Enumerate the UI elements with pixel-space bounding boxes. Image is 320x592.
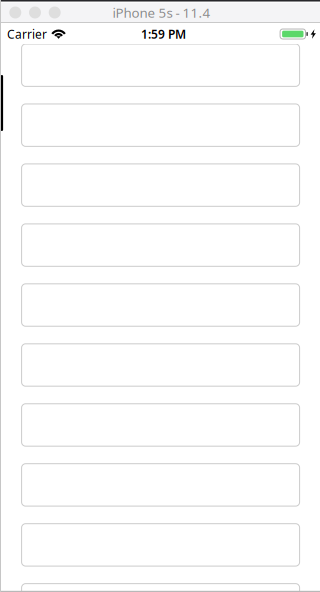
button[interactable]: Text field bbox=[0, 464, 320, 524]
button[interactable]: Text field bbox=[0, 344, 320, 404]
button[interactable]: Text field bbox=[0, 584, 320, 592]
button[interactable]: Text field bbox=[0, 164, 320, 224]
button[interactable]: Text field bbox=[0, 104, 320, 164]
staticText: 1:59 PM bbox=[141, 26, 186, 42]
button[interactable]: Text field bbox=[0, 224, 320, 284]
button[interactable]: Text field bbox=[0, 44, 320, 104]
button[interactable]: Text field bbox=[0, 284, 320, 344]
button[interactable]: Text field bbox=[0, 524, 320, 584]
staticText: iPhone 5s - 11.4 bbox=[112, 4, 210, 21]
button[interactable]: Text field bbox=[0, 404, 320, 464]
staticText: Carrier bbox=[7, 26, 47, 42]
